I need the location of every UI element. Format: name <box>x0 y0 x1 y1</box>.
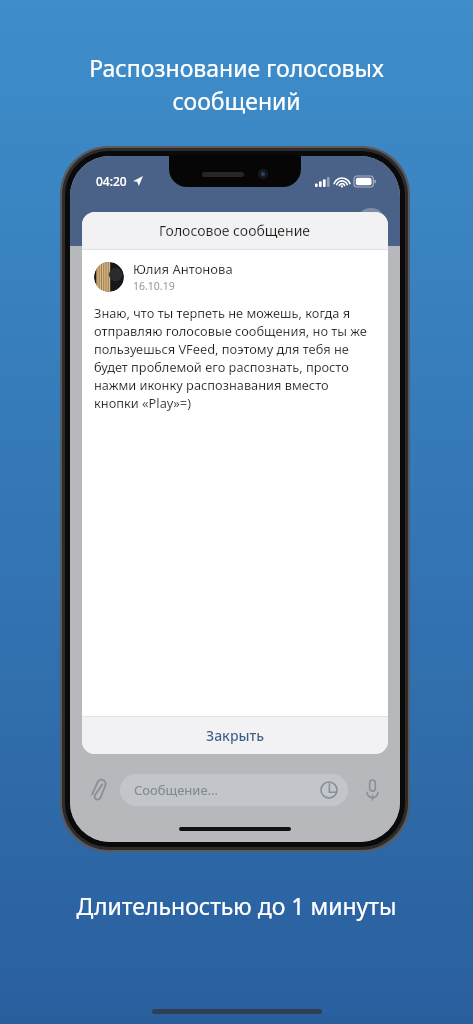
staticText: Заходил вчера в 22:50 <box>179 226 293 240</box>
staticText: Александр Иванов <box>163 206 298 226</box>
button[interactable]: Sticker <box>320 781 338 799</box>
button[interactable]: Back <box>78 205 114 241</box>
button[interactable]: Закрыть <box>82 717 388 754</box>
button[interactable]: Александр Иванов <box>163 206 308 240</box>
button[interactable]: Attach <box>82 774 114 806</box>
staticText: 16.10.19 <box>133 279 175 293</box>
staticText: Закрыть <box>206 726 265 745</box>
staticText: Голосовое сообщение <box>159 221 311 240</box>
staticText: 04:20 <box>96 173 127 189</box>
button[interactable]: Voice message <box>356 774 388 806</box>
staticText: Знаю, что ты терпеть не можешь, когда я … <box>94 304 376 412</box>
button[interactable]: Сообщение... <box>120 774 348 806</box>
staticText: Распознование голосовых <box>28 52 445 83</box>
button[interactable]: Profile <box>356 208 386 238</box>
staticText: Длительностью до 1 минуты <box>0 890 473 921</box>
staticText: Сообщение... <box>134 781 219 799</box>
staticText: Юлия Антонова <box>133 260 233 278</box>
staticText: сообщений <box>28 85 445 116</box>
